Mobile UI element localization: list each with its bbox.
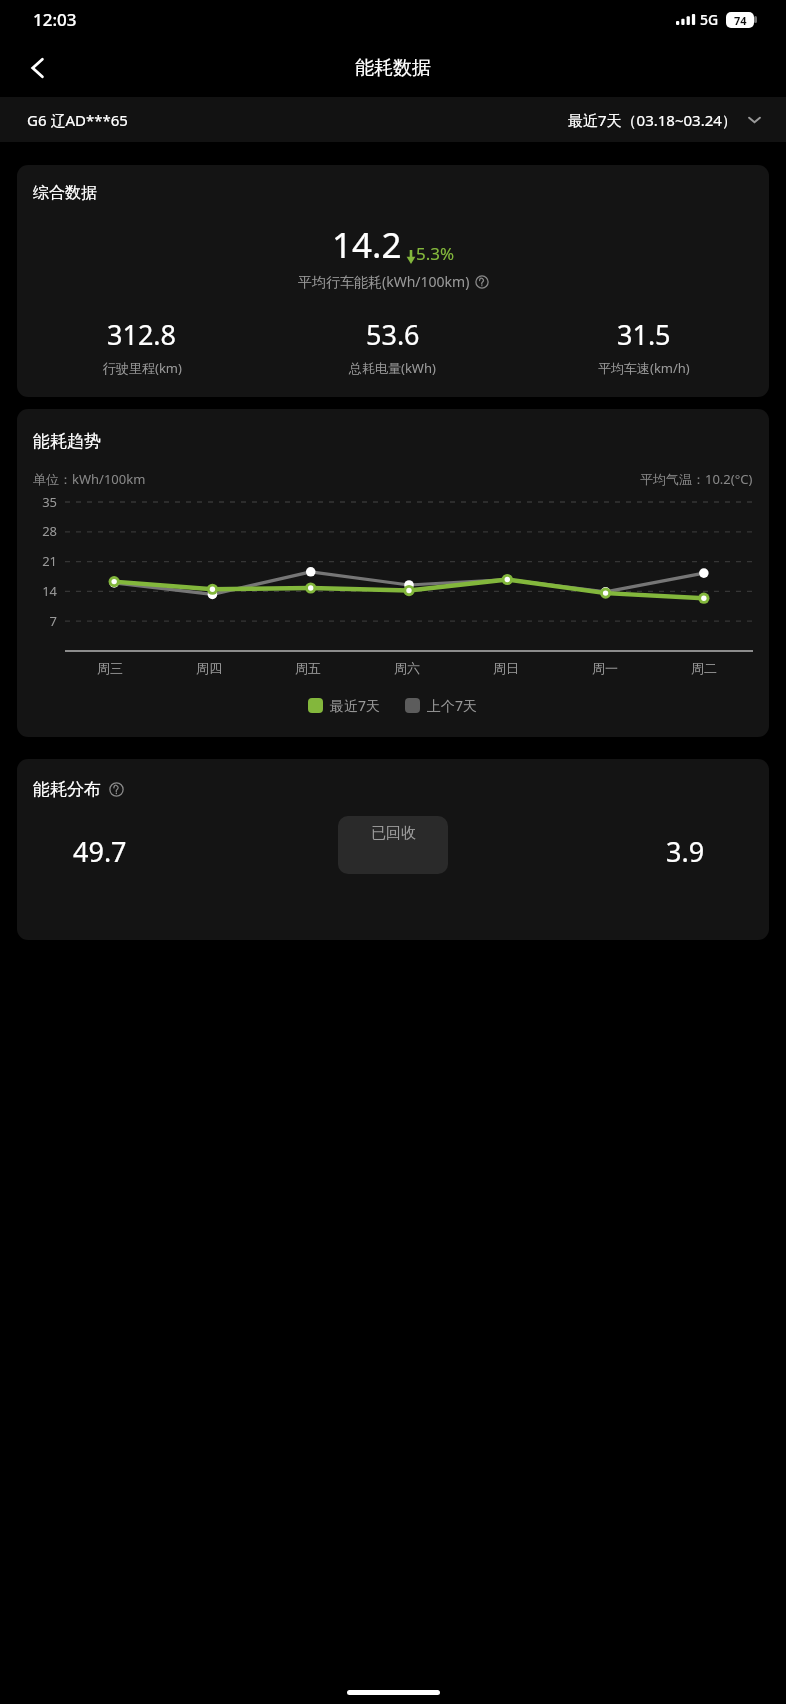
staticText: 周四 — [196, 660, 222, 676]
staticText: 周二 — [691, 660, 717, 676]
staticText: 能耗趋势 — [33, 431, 101, 452]
staticText: 总耗电量(kWh) — [349, 359, 436, 377]
staticText: 312.8 — [107, 316, 177, 353]
staticText: 5.3% — [416, 242, 455, 265]
staticText: 周三 — [97, 660, 123, 676]
staticText: G6 辽AD***65 — [27, 110, 128, 130]
staticText: 35 — [33, 493, 57, 511]
staticText: 综合数据 — [33, 183, 97, 203]
staticText: 周六 — [394, 660, 420, 676]
staticText: 3.9 — [666, 833, 705, 870]
staticText: 能耗数据 — [355, 56, 431, 80]
staticText: 7 — [33, 612, 57, 630]
staticText: 14 — [33, 582, 57, 600]
staticText: 能耗分布 — [33, 779, 101, 800]
staticText: 上个7天 — [427, 696, 478, 715]
staticText: 5G — [700, 10, 719, 29]
staticText: 最近7天 — [330, 696, 381, 715]
button[interactable]: 能耗分布 — [17, 759, 769, 940]
staticText: 28 — [33, 522, 57, 540]
button[interactable]: G6 辽AD***65 — [0, 97, 786, 142]
staticText: 49.7 — [73, 833, 127, 870]
staticText: 14.2 — [332, 221, 402, 269]
button[interactable]: Back — [12, 42, 64, 94]
staticText: 53.6 — [366, 316, 420, 353]
staticText: 74 — [734, 13, 747, 28]
staticText: 平均行车能耗(kWh/100km) — [298, 272, 470, 291]
staticText: 平均气温：10.2(°C) — [640, 470, 753, 488]
staticText: 12:03 — [33, 8, 77, 31]
staticText: 周日 — [493, 660, 519, 676]
staticText: 21 — [33, 552, 57, 570]
staticText: 单位：kWh/100km — [33, 470, 146, 488]
button[interactable]: 能耗趋势 — [17, 409, 769, 737]
staticText: 周一 — [592, 660, 618, 676]
staticText: 最近7天（03.18~03.24） — [568, 110, 737, 130]
staticText: 已回收 — [371, 824, 416, 843]
staticText: 平均车速(km/h) — [598, 359, 690, 377]
staticText: 周五 — [295, 660, 321, 676]
staticText: 31.5 — [617, 316, 671, 353]
button[interactable]: 综合数据 — [17, 165, 769, 397]
staticText: 行驶里程(km) — [103, 359, 182, 377]
